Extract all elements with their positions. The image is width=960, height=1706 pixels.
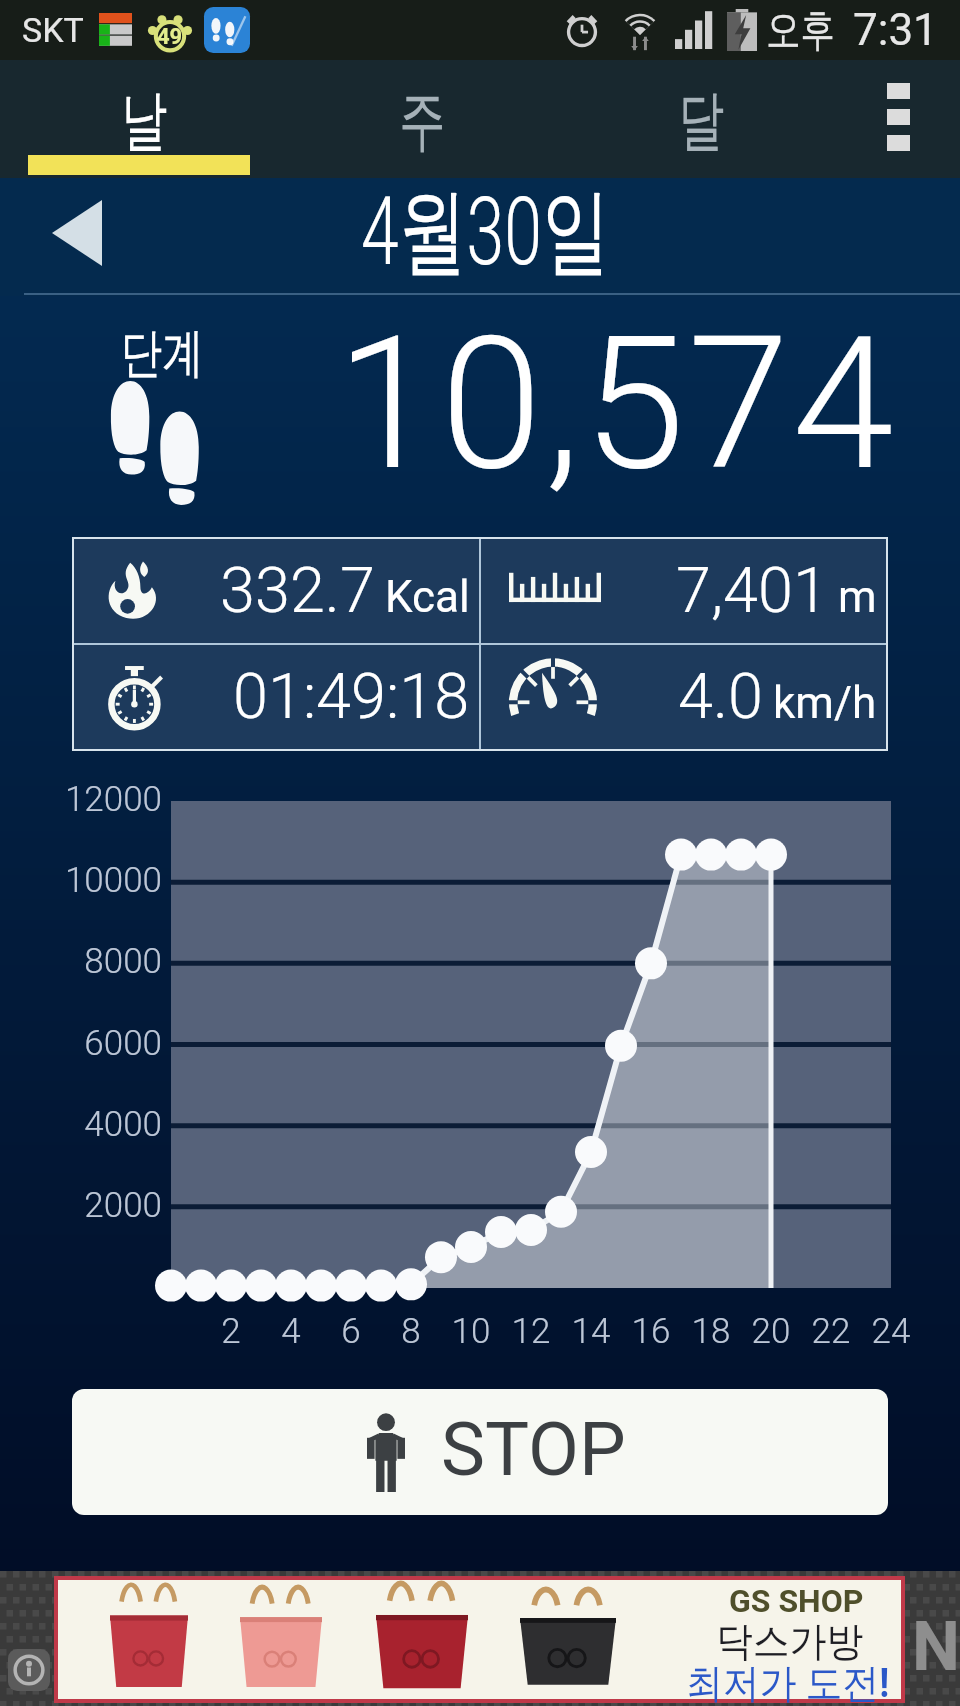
button[interactable]: Calories — [74, 539, 479, 643]
staticText: 최저가 도전! — [686, 1658, 889, 1706]
staticText: 10,574 — [336, 297, 897, 511]
button[interactable]: Previous day — [40, 193, 114, 273]
button[interactable]: 달 — [557, 60, 836, 178]
button[interactable]: Speed — [481, 645, 886, 749]
staticText: 18 — [671, 1311, 751, 1352]
staticText: SKT — [22, 10, 84, 50]
staticText: 날 — [121, 79, 167, 162]
staticText: 16 — [611, 1311, 691, 1352]
button[interactable]: STOP — [72, 1389, 888, 1515]
staticText: 6000 — [0, 1023, 162, 1064]
button[interactable]: GS SHOP — [58, 1580, 901, 1699]
staticText: 단계 — [121, 320, 204, 387]
staticText: 4 — [251, 1311, 331, 1352]
staticText: Kcal — [385, 571, 470, 623]
staticText: STOP — [441, 1406, 626, 1493]
staticText: 7:31 — [853, 4, 938, 56]
staticText: 주 — [399, 79, 445, 162]
staticText: 4.0 — [678, 660, 763, 734]
staticText: 14 — [551, 1311, 631, 1352]
staticText: 24 — [851, 1311, 931, 1352]
button[interactable]: More options — [836, 60, 960, 178]
other: Distance — [509, 545, 601, 637]
staticText: 2 — [191, 1311, 271, 1352]
other: Speed — [509, 653, 597, 741]
staticText: 01:49:18 — [233, 660, 470, 734]
staticText: 20 — [731, 1311, 811, 1352]
other: Duration — [102, 661, 174, 733]
other: Calories — [102, 559, 166, 623]
button[interactable]: 주 — [278, 60, 557, 178]
staticText: 달 — [678, 79, 724, 162]
staticText: 오후 — [766, 3, 835, 58]
staticText: m — [838, 571, 877, 623]
staticText: 10000 — [0, 860, 162, 901]
staticText: 12000 — [0, 779, 162, 820]
staticText: 22 — [791, 1311, 871, 1352]
button[interactable]: Distance — [481, 539, 886, 643]
staticText: 10 — [431, 1311, 511, 1352]
staticText: 8 — [371, 1311, 451, 1352]
staticText: 4000 — [0, 1104, 162, 1145]
staticText: 332.7 — [220, 554, 375, 628]
staticText: 6 — [311, 1311, 391, 1352]
staticText: 8000 — [0, 941, 162, 982]
button[interactable]: 날 — [0, 60, 278, 178]
button[interactable]: Duration — [74, 645, 479, 749]
staticText: GS SHOP — [729, 1582, 864, 1620]
staticText: 7,401 — [676, 554, 828, 628]
staticText: 4월30일 — [361, 173, 610, 291]
other: Ad info — [8, 1649, 50, 1691]
staticText: 12 — [491, 1311, 571, 1352]
staticText: km/h — [773, 677, 877, 729]
staticText: 49 — [157, 24, 183, 50]
staticText: 닥스가방 — [716, 1616, 863, 1666]
staticText: 2000 — [0, 1185, 162, 1226]
staticText: N — [912, 1607, 960, 1687]
